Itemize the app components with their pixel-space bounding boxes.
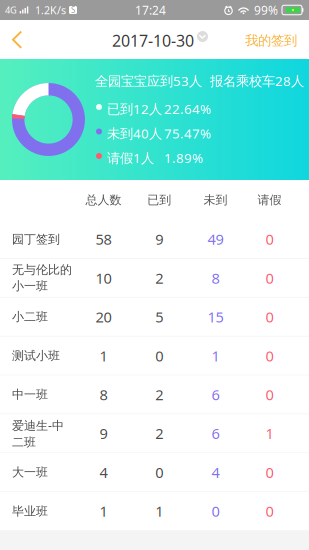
staticText: 9 (155, 229, 163, 249)
staticText: 园丁签到 (12, 232, 60, 246)
staticText: 1 (211, 346, 219, 365)
staticText: 我的签到 (245, 32, 297, 49)
staticText: 0 (155, 346, 163, 365)
button[interactable]: 我的签到 (239, 21, 303, 60)
staticText: 0 (155, 463, 163, 482)
staticText: 4 (99, 463, 107, 482)
staticText: 未到 (203, 193, 227, 207)
staticText: 未到40人 (107, 124, 162, 142)
staticText: 小二班 (12, 309, 48, 324)
staticText: 测试小班 (12, 348, 60, 363)
staticText: 10 (95, 268, 111, 288)
staticText: 0 (265, 385, 273, 404)
staticText: 22.64% (164, 100, 211, 118)
staticText: 1 (155, 501, 163, 521)
staticText: 1 (265, 424, 273, 443)
staticText: 2 (155, 424, 163, 443)
button[interactable]: Back (0, 20, 34, 59)
staticText: 6 (211, 424, 219, 443)
staticText: 17:24 (135, 2, 166, 18)
staticText: 全园宝宝应到53人 (95, 72, 202, 90)
staticText: 请假 (257, 193, 281, 207)
staticText: 75.47% (164, 124, 211, 142)
staticText: 爱迪生-中 (12, 417, 64, 433)
staticText: 0 (265, 268, 273, 288)
button[interactable]: 小二班 (0, 298, 309, 337)
staticText: 6 (211, 385, 219, 404)
staticText: 0 (211, 501, 219, 521)
staticText: 0 (265, 501, 273, 521)
staticText: 毕业班 (12, 504, 48, 518)
staticText: 9 (99, 424, 107, 443)
staticText: 1 (99, 501, 107, 521)
staticText: 2 (155, 268, 163, 288)
button[interactable]: 无与伦比的 (0, 259, 309, 298)
staticText: 总人数 (85, 193, 121, 207)
staticText: 1 (99, 346, 107, 365)
staticText: 4 (211, 463, 219, 482)
staticText: 小一班 (12, 279, 48, 293)
staticText: 中一班 (12, 387, 48, 402)
staticText: 报名乘校车28人 (210, 72, 304, 90)
staticText: S (71, 5, 75, 15)
staticText: 0 (265, 463, 273, 482)
button[interactable]: 大一班 (0, 453, 309, 492)
staticText: 0 (265, 307, 273, 327)
staticText: 99% (254, 2, 278, 18)
staticText: 2 (155, 385, 163, 404)
button[interactable]: 园丁签到 (0, 220, 309, 259)
staticText: 58 (95, 229, 111, 249)
staticText: 大一班 (12, 465, 48, 480)
staticText: 0 (265, 229, 273, 249)
staticText: 0 (265, 346, 273, 365)
staticText: 4G (5, 4, 17, 16)
staticText: 49 (207, 229, 223, 249)
button[interactable]: 毕业班 (0, 492, 309, 531)
staticText: 二班 (12, 435, 36, 449)
staticText: 5 (155, 307, 163, 327)
staticText: 请假1人 (107, 149, 154, 167)
staticText: 无与伦比的 (12, 262, 72, 277)
staticText: 已到12人 (107, 100, 162, 118)
staticText: 20 (95, 307, 111, 327)
button[interactable]: 爱迪生-中 (0, 414, 309, 453)
button[interactable]: 测试小班 (0, 337, 309, 376)
staticText: 15 (207, 307, 223, 327)
staticText: 2017-10-30 (112, 30, 194, 51)
staticText: 8 (211, 268, 219, 288)
staticText: 已到 (147, 193, 171, 207)
button[interactable]: 中一班 (0, 376, 309, 414)
staticText: 8 (99, 385, 107, 404)
staticText: 1.2K/s (35, 3, 66, 17)
staticText: 1.89% (164, 149, 203, 167)
